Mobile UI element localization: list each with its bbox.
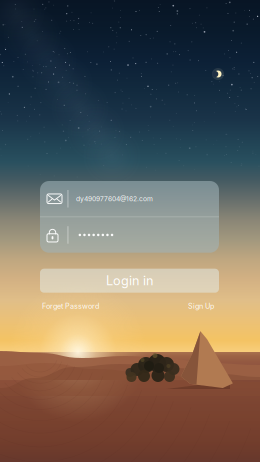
- staticText: dy490977604@162.com: [76, 195, 153, 203]
- staticText: Login in: [106, 273, 153, 288]
- button[interactable]: Password: [40, 217, 219, 253]
- staticText: Forget Password: [42, 302, 99, 310]
- staticText: Sign Up: [188, 302, 214, 310]
- button[interactable]: Login in: [40, 269, 219, 293]
- button[interactable]: Email address: [40, 181, 219, 216]
- button[interactable]: Forget Password: [40, 302, 99, 310]
- button[interactable]: Sign Up: [188, 302, 219, 310]
